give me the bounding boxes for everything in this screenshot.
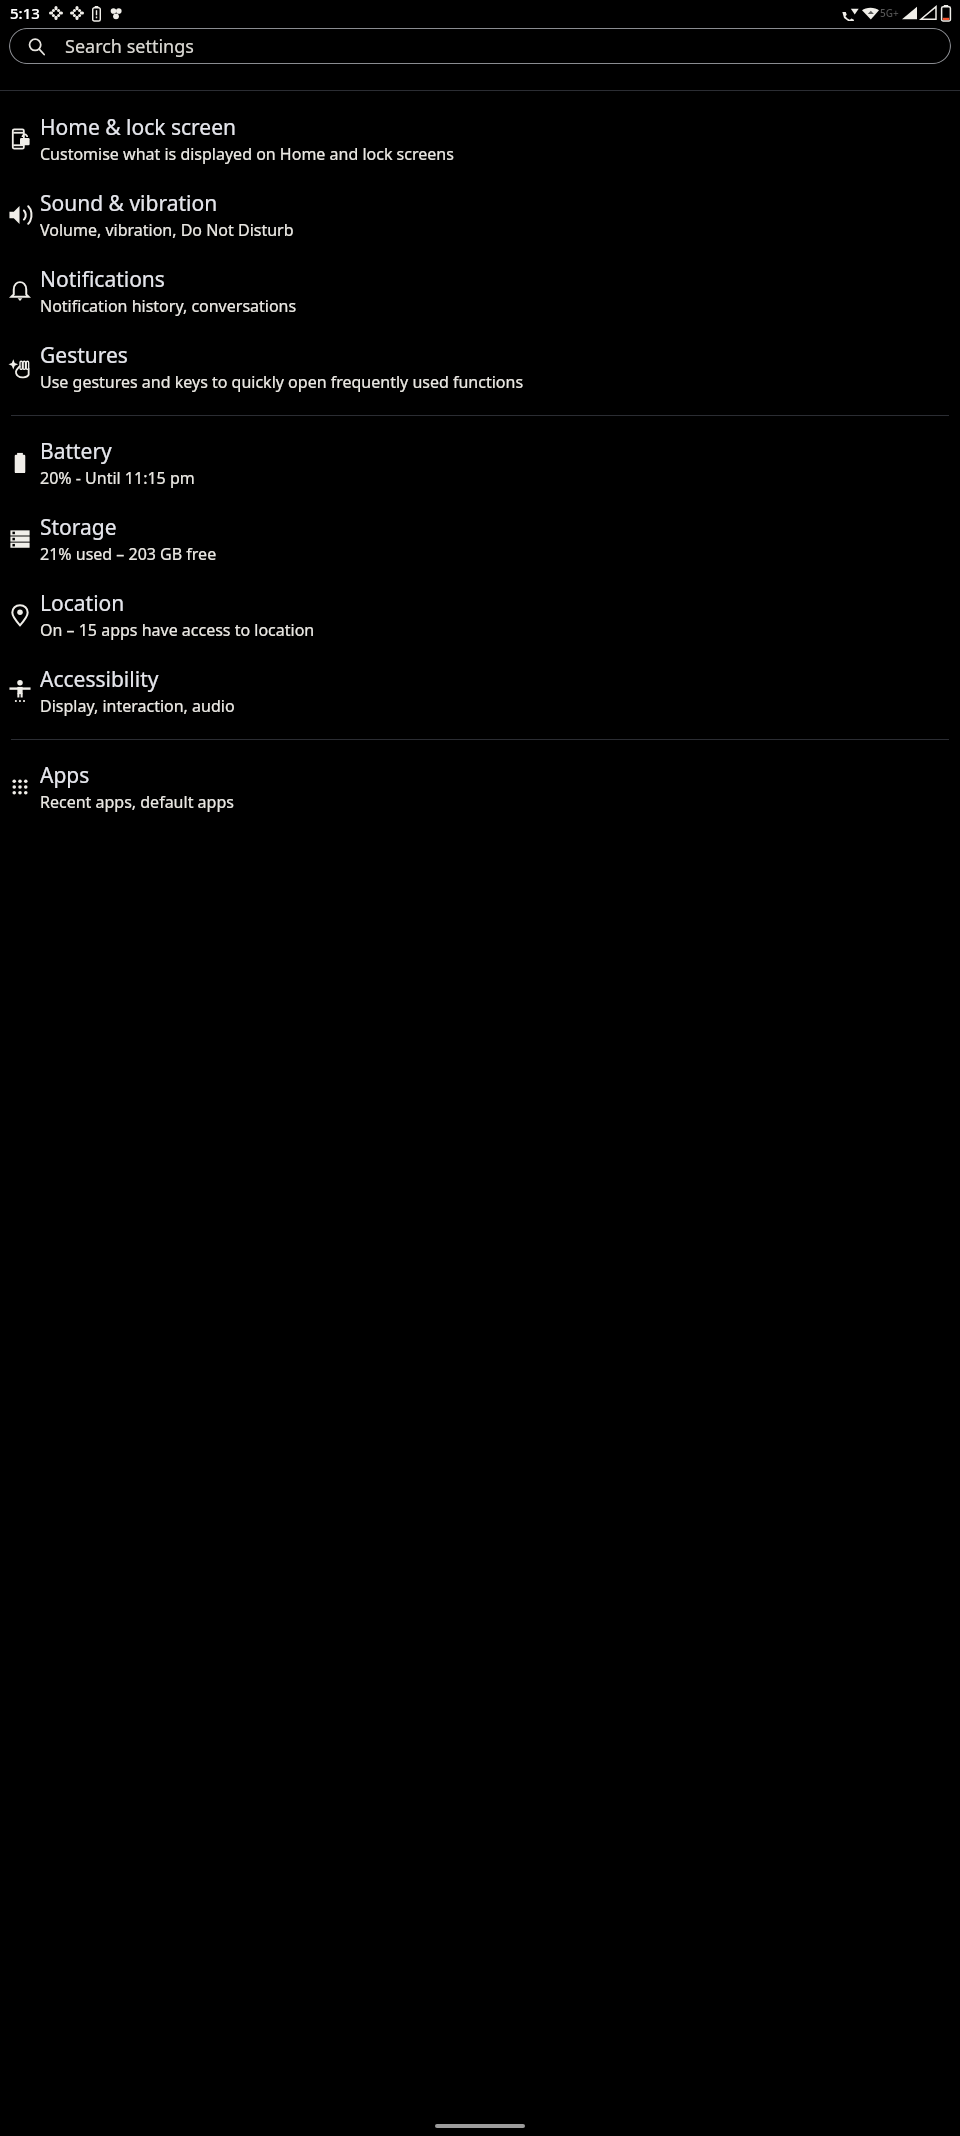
staticText: Notification history, conversations	[40, 295, 297, 317]
staticText: Home & lock screen	[40, 113, 236, 142]
staticText: Notifications	[40, 265, 165, 294]
staticText: Display, interaction, audio	[40, 695, 235, 717]
staticText: Gestures	[40, 341, 128, 370]
button[interactable]: Search settings	[9, 28, 951, 64]
other: Accessibility	[8, 679, 32, 703]
other: Sound and vibration	[8, 203, 32, 227]
other: Apps	[8, 775, 32, 799]
staticText: Apps	[40, 761, 90, 790]
button[interactable]: Notifications	[0, 252, 960, 328]
staticText: Location	[40, 589, 125, 618]
button[interactable]: Accessibility	[0, 652, 960, 728]
staticText: Use gestures and keys to quickly open fr…	[40, 371, 524, 393]
button[interactable]: Home and lock screen	[0, 91, 960, 176]
staticText: Sound & vibration	[40, 189, 218, 218]
staticText: 5:13	[10, 3, 40, 23]
other: Storage	[8, 527, 32, 551]
button[interactable]: Battery	[0, 416, 960, 500]
button[interactable]: Apps	[0, 740, 960, 824]
staticText: Search settings	[65, 34, 194, 59]
button[interactable]: Storage	[0, 500, 960, 576]
staticText: 5G+	[880, 6, 899, 20]
staticText: 20% - Until 11:15 pm	[40, 467, 195, 489]
button[interactable]: Location	[0, 576, 960, 652]
button[interactable]: Gestures	[0, 328, 960, 404]
other: Notifications	[8, 279, 32, 303]
button[interactable]: Sound and vibration	[0, 176, 960, 252]
staticText: Accessibility	[40, 665, 159, 694]
staticText: On – 15 apps have access to location	[40, 619, 315, 641]
other: Home and lock screen	[8, 127, 32, 151]
staticText: Recent apps, default apps	[40, 791, 234, 813]
staticText: 21% used – 203 GB free	[40, 543, 217, 565]
other: Battery	[8, 451, 32, 475]
staticText: Storage	[40, 513, 117, 542]
other: Gestures	[8, 355, 32, 379]
staticText: Volume, vibration, Do Not Disturb	[40, 219, 294, 241]
staticText: Customise what is displayed on Home and …	[40, 143, 454, 165]
other: Location	[8, 603, 32, 627]
staticText: Battery	[40, 437, 112, 466]
